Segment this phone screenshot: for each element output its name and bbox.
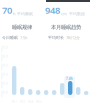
staticText: 7时12分 xyxy=(66,35,80,40)
staticText: 00:00 xyxy=(1,82,8,89)
staticText: 00:00 xyxy=(1,73,8,80)
staticText: 00:00 xyxy=(1,46,8,53)
staticText: 7.4h xyxy=(66,77,73,80)
staticText: 睡眠规律 xyxy=(12,24,32,31)
staticText: 7.5h xyxy=(20,35,27,40)
staticText: 00:00 xyxy=(1,55,8,62)
staticText: 70 xyxy=(2,4,12,16)
staticText: 00:00 xyxy=(1,64,8,71)
staticText: cm xyxy=(61,11,67,16)
staticText: h xyxy=(13,11,15,16)
staticText: 今日睡眠 xyxy=(2,35,18,40)
staticText: 948 xyxy=(45,4,60,16)
staticText: 平均睡眠 xyxy=(17,11,33,16)
staticText: 平均时长 xyxy=(48,35,64,40)
staticText: 周一 周三 周五 周日 xyxy=(12,100,42,103)
staticText: 本月睡眠趋势 xyxy=(51,24,81,31)
staticText: 平均数据 xyxy=(69,11,85,16)
staticText: 00:00 xyxy=(1,91,8,98)
